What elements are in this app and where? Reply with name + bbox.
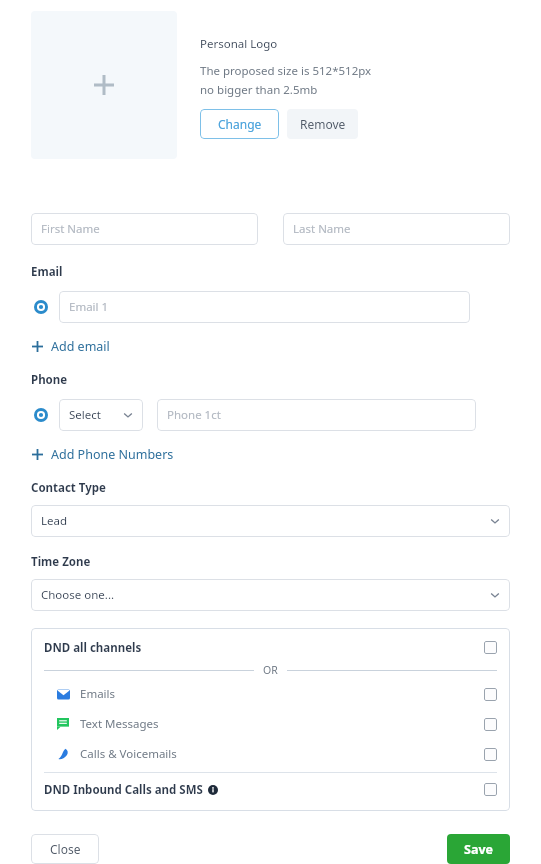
button[interactable]: Add Phone Numbers xyxy=(30,443,176,466)
button[interactable]: Calls & Voicemails xyxy=(44,739,497,769)
button[interactable]: Toggle xyxy=(484,688,497,701)
staticText: Remove xyxy=(300,116,346,132)
staticText: Contact Type xyxy=(31,480,106,496)
staticText: Calls & Voicemails xyxy=(80,746,177,762)
button[interactable]: Choose one... xyxy=(31,579,510,611)
button[interactable]: Text Messages xyxy=(44,709,497,739)
staticText: no bigger than 2.5mb xyxy=(200,82,318,98)
button[interactable]: Select xyxy=(59,399,143,431)
staticText: Select xyxy=(69,407,122,423)
staticText: Personal Logo xyxy=(200,36,278,52)
staticText: Change xyxy=(218,116,262,132)
button[interactable]: First Name xyxy=(31,213,258,245)
button[interactable]: Toggle xyxy=(484,748,497,761)
button[interactable]: Primary email xyxy=(31,297,51,317)
button[interactable]: Save xyxy=(447,834,510,864)
staticText: Text Messages xyxy=(80,716,159,732)
button[interactable]: Emails xyxy=(44,679,497,709)
button[interactable]: Lead xyxy=(31,505,510,537)
button[interactable]: DND all channels xyxy=(44,634,497,661)
button[interactable]: Upload logo xyxy=(31,11,177,159)
staticText: Time Zone xyxy=(31,554,91,570)
button[interactable]: Toggle xyxy=(484,718,497,731)
button[interactable]: Add email xyxy=(30,335,112,358)
staticText: First Name xyxy=(41,221,100,237)
button[interactable]: Primary phone xyxy=(31,405,51,425)
staticText: Phone 1ct xyxy=(167,407,221,423)
button[interactable]: Phone 1ct xyxy=(157,399,476,431)
button[interactable]: Toggle xyxy=(484,641,497,654)
staticText: DND Inbound Calls and SMS xyxy=(44,782,203,798)
staticText: OR xyxy=(263,663,278,677)
button[interactable]: Change xyxy=(200,109,279,139)
button[interactable]: DND Inbound Calls and SMS xyxy=(44,776,497,803)
button[interactable]: Last Name xyxy=(283,213,510,245)
staticText: Emails xyxy=(80,686,116,702)
staticText: Save xyxy=(464,841,493,858)
staticText: Email xyxy=(31,264,63,280)
staticText: Last Name xyxy=(293,221,351,237)
staticText: The proposed size is 512*512px xyxy=(200,63,372,79)
button[interactable]: Remove xyxy=(287,109,358,139)
button[interactable]: Close xyxy=(31,834,99,864)
staticText: Add Phone Numbers xyxy=(51,446,174,463)
staticText: Lead xyxy=(41,513,489,529)
button[interactable]: Email 1 xyxy=(59,291,470,323)
staticText: DND all channels xyxy=(44,640,142,656)
staticText: Add email xyxy=(51,338,110,355)
staticText: Close xyxy=(50,841,81,857)
button[interactable]: Toggle xyxy=(484,783,497,796)
staticText: Phone xyxy=(31,372,68,388)
staticText: Choose one... xyxy=(41,587,489,603)
staticText: Email 1 xyxy=(69,299,109,315)
